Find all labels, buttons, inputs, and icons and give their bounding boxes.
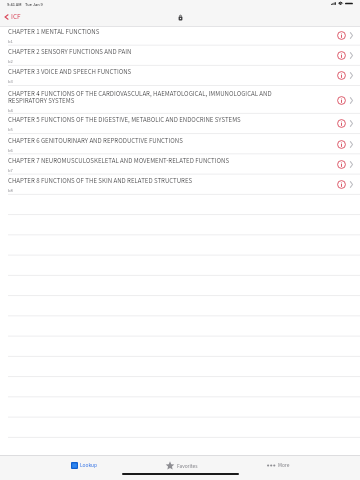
staticText: b2 [8, 58, 13, 65]
button[interactable]: Lookup [65, 460, 103, 470]
button[interactable]: ICF [0, 9, 25, 26]
button[interactable]: CHAPTER 3 VOICE AND SPEECH FUNCTIONS [0, 65, 360, 85]
button[interactable]: CHAPTER 6 GENITOURINARY AND REPRODUCTIVE… [0, 134, 360, 154]
button[interactable]: CHAPTER 8 FUNCTIONS OF THE SKIN AND RELA… [0, 174, 360, 194]
button[interactable]: CHAPTER 2 SENSORY FUNCTIONS AND PAIN [0, 45, 360, 65]
staticText: CHAPTER 7 NEUROMUSCULOSKELETAL AND MOVEM… [8, 156, 230, 166]
staticText: 9:41 AM [7, 1, 22, 7]
staticText: b3 [8, 78, 13, 85]
staticText: CHAPTER 3 VOICE AND SPEECH FUNCTIONS [8, 67, 132, 77]
button[interactable]: Information [337, 51, 346, 60]
staticText: More [278, 461, 290, 469]
staticText: Favorites [177, 462, 198, 470]
staticText: CHAPTER 2 SENSORY FUNCTIONS AND PAIN [8, 47, 132, 57]
button[interactable]: Information [337, 160, 346, 169]
staticText: CHAPTER 5 FUNCTIONS OF THE DIGESTIVE, ME… [8, 115, 241, 125]
staticText: CHAPTER 1 MENTAL FUNCTIONS [8, 27, 100, 37]
staticText: b8 [8, 187, 13, 194]
staticText: CHAPTER 8 FUNCTIONS OF THE SKIN AND RELA… [8, 176, 193, 186]
staticText: b7 [8, 167, 13, 174]
button[interactable]: Favorites [159, 460, 204, 471]
staticText: CHAPTER 4 FUNCTIONS OF THE CARDIOVASCULA… [8, 89, 280, 106]
button[interactable]: Information [337, 140, 346, 149]
button[interactable]: CHAPTER 4 FUNCTIONS OF THE CARDIOVASCULA… [0, 86, 360, 114]
staticText: b5 [8, 126, 13, 133]
button[interactable]: Information [337, 31, 346, 40]
staticText: b6 [8, 147, 13, 154]
button[interactable]: CHAPTER 5 FUNCTIONS OF THE DIGESTIVE, ME… [0, 113, 360, 133]
staticText: ICF [11, 12, 21, 22]
button[interactable]: Information [337, 180, 346, 189]
button[interactable]: CHAPTER 7 NEUROMUSCULOSKELETAL AND MOVEM… [0, 154, 360, 174]
staticText: Lookup [80, 461, 97, 469]
staticText: Tue Jan 9 [25, 1, 43, 7]
button[interactable]: CHAPTER 1 MENTAL FUNCTIONS [0, 25, 360, 45]
staticText: b1 [8, 38, 13, 45]
button[interactable]: More [261, 460, 296, 470]
staticText: b4 [8, 107, 13, 114]
button[interactable]: Information [337, 96, 346, 105]
button[interactable]: Information [337, 71, 346, 80]
staticText: CHAPTER 6 GENITOURINARY AND REPRODUCTIVE… [8, 136, 183, 146]
button[interactable]: Information [337, 119, 346, 128]
